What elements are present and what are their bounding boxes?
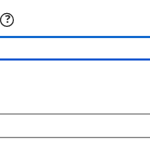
staticText: ? — [5, 11, 11, 25]
button[interactable]: Help — [0, 13, 14, 27]
button[interactable]: Text field 2 — [0, 38, 150, 60]
button[interactable]: Text field 4 — [0, 115, 150, 138]
button[interactable]: Text field 1 — [0, 14, 150, 38]
button[interactable]: Text field 3 — [0, 61, 150, 114]
